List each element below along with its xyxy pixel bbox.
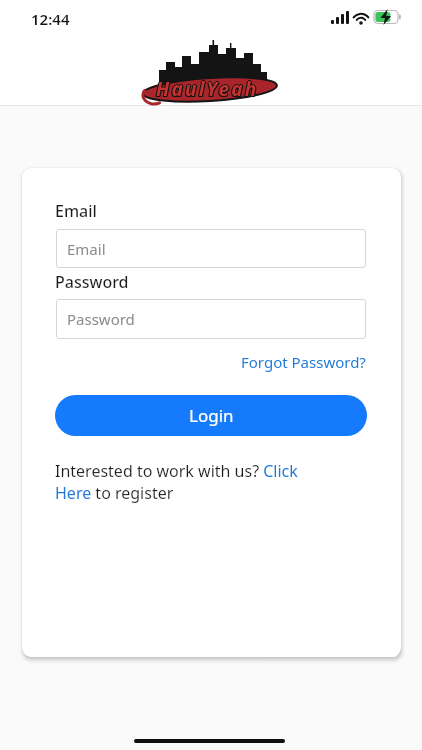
button[interactable]: Login: [55, 395, 367, 436]
staticText: HaulYeah: [157, 77, 260, 103]
staticText: HaulYeah: [156, 76, 259, 102]
staticText: Login: [189, 404, 234, 427]
staticText: Email: [67, 239, 106, 259]
staticText: HaulYeah: [156, 77, 259, 103]
staticText: Password: [55, 271, 129, 293]
staticText: HaulYeah: [155, 77, 258, 103]
button[interactable]: Interested to work with us? Click Here t…: [55, 460, 370, 504]
button[interactable]: Forgot Password?: [241, 352, 366, 372]
staticText: HaulYeah: [157, 76, 260, 102]
staticText: Password: [67, 309, 135, 329]
staticText: Email: [55, 200, 97, 222]
button[interactable]: Email: [56, 229, 366, 268]
button[interactable]: Password: [56, 299, 366, 339]
staticText: 12:44: [31, 9, 70, 29]
staticText: HaulYeah: [155, 76, 258, 102]
staticText: HaulYeah: [156, 75, 259, 101]
